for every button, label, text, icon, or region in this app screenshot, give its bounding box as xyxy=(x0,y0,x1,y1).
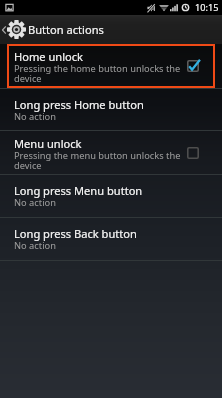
staticText: Pressing the menu button unlocks the dev… xyxy=(14,151,181,171)
button[interactable]: Home unlock xyxy=(0,44,222,88)
button[interactable]: Enabled xyxy=(183,56,203,76)
button[interactable]: Menu unlock xyxy=(0,131,222,174)
button[interactable]: Long press Menu button xyxy=(0,175,222,217)
staticText: Menu unlock xyxy=(14,136,82,151)
staticText: No action xyxy=(14,112,56,122)
button[interactable]: Disabled xyxy=(183,143,203,163)
button[interactable]: Navigate up xyxy=(0,15,27,44)
staticText: Button actions xyxy=(28,22,104,37)
staticText: Home unlock xyxy=(14,49,83,64)
staticText: Long press Menu button xyxy=(14,183,143,198)
staticText: Long press Back button xyxy=(14,226,137,241)
staticText: 10:15 xyxy=(195,1,219,14)
staticText: No action xyxy=(14,241,56,251)
staticText: No action xyxy=(14,198,56,208)
button[interactable]: Long press Back button xyxy=(0,218,222,260)
button[interactable]: Long press Home button xyxy=(0,89,222,130)
staticText: Long press Home button xyxy=(14,97,144,112)
staticText: Pressing the home button unlocks the dev… xyxy=(14,64,181,84)
